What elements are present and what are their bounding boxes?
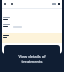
button[interactable]: View details of treatments bbox=[4, 45, 60, 72]
staticText: View details of treatments bbox=[18, 54, 46, 64]
